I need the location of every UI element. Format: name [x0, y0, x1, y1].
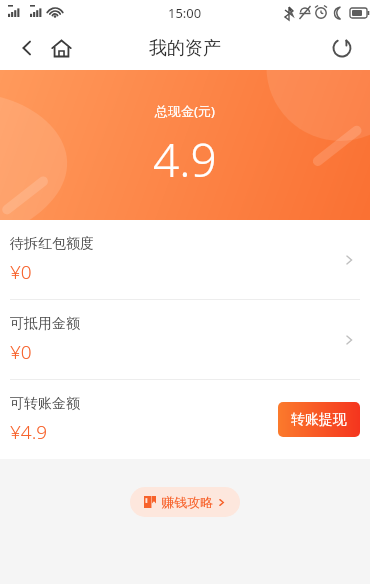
- button[interactable]: 赚钱攻略: [130, 487, 240, 517]
- staticText: ¥0: [10, 339, 32, 365]
- button[interactable]: 转账提现: [278, 402, 360, 437]
- staticText: 总现金(元): [155, 102, 215, 120]
- staticText: 我的资产: [149, 37, 221, 60]
- staticText: 赚钱攻略: [161, 494, 213, 510]
- button[interactable]: 可抵用金额: [0, 300, 370, 379]
- staticText: 15:00: [168, 4, 202, 22]
- button[interactable]: Home: [44, 31, 78, 65]
- staticText: 转账提现: [291, 411, 347, 429]
- staticText: 可转账金额: [10, 395, 80, 413]
- staticText: ¥0: [10, 259, 32, 285]
- button[interactable]: 待拆红包额度: [0, 220, 370, 299]
- button[interactable]: Back: [10, 31, 44, 65]
- button[interactable]: 可转账金额: [0, 380, 370, 459]
- button[interactable]: Refresh: [324, 30, 360, 66]
- staticText: 可抵用金额: [10, 315, 80, 333]
- staticText: 待拆红包额度: [10, 235, 94, 253]
- staticText: ¥4.9: [10, 419, 48, 445]
- staticText: 4.9: [153, 128, 217, 191]
